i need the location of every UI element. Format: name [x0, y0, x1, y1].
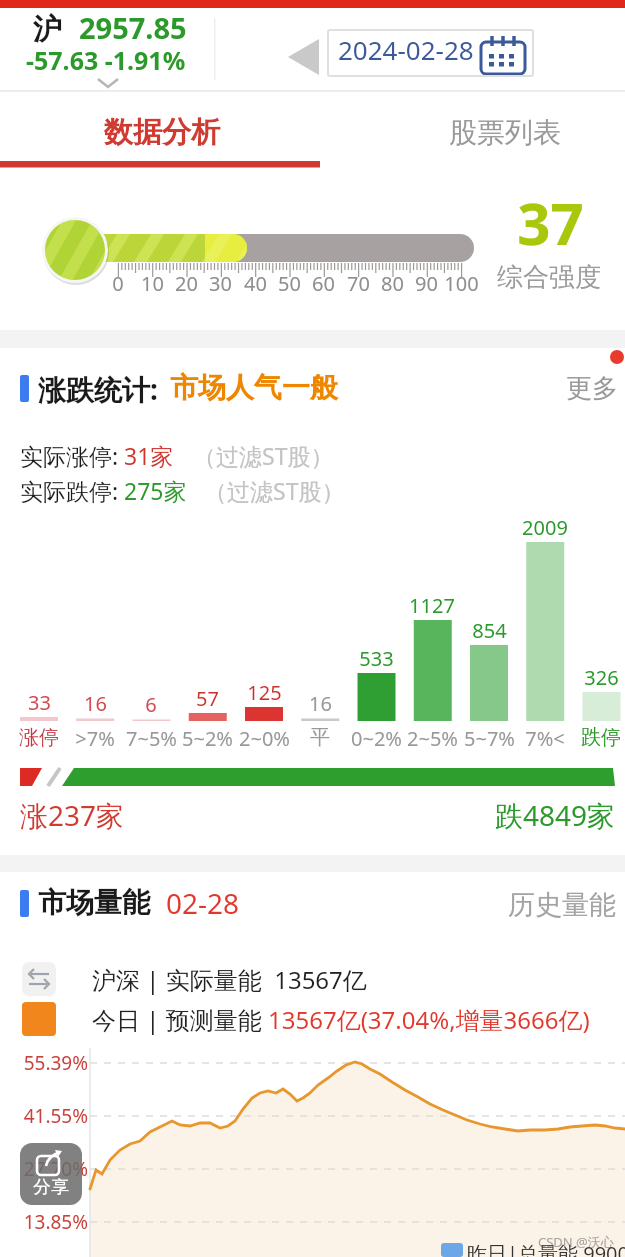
staticText: 02-28: [166, 884, 240, 922]
staticText: 5~7%: [464, 725, 515, 752]
staticText: 2~0%: [239, 725, 290, 752]
staticText: 跌4849家: [494, 796, 615, 834]
staticText: 1127: [409, 592, 455, 619]
staticText: 20: [175, 270, 198, 297]
staticText: 16: [84, 690, 107, 717]
staticText: 90: [415, 270, 438, 297]
staticText: 6: [145, 691, 157, 718]
staticText: 市场量能: [38, 885, 150, 920]
staticText: 2~5%: [407, 725, 458, 752]
staticText: 55.39%: [23, 1050, 88, 1076]
staticText: 41.55%: [23, 1103, 88, 1129]
staticText: 2024-02-28: [338, 32, 474, 67]
staticText: 80: [381, 270, 404, 297]
staticText: 275家: [124, 475, 187, 506]
staticText: 沪: [33, 11, 62, 48]
staticText: 27.70%: [23, 1156, 88, 1182]
staticText: >7%: [75, 725, 115, 752]
staticText: 0: [112, 270, 124, 297]
staticText: 37: [517, 183, 584, 262]
button[interactable]: 2024-02-28: [327, 29, 534, 77]
staticText: 125: [247, 679, 282, 706]
staticText: 40: [244, 270, 267, 297]
button[interactable]: [0, 92, 320, 168]
button[interactable]: 更多: [550, 364, 625, 408]
staticText: 7~5%: [126, 725, 177, 752]
staticText: 13.85%: [23, 1209, 88, 1235]
staticText: 30: [209, 270, 232, 297]
staticText: 10: [141, 270, 164, 297]
staticText: 实际跌停:: [20, 475, 119, 506]
staticText: 533: [359, 645, 394, 672]
staticText: CSDN @沃心: [538, 1233, 614, 1251]
staticText: （过滤ST股）: [204, 475, 345, 506]
staticText: 5~2%: [182, 725, 233, 752]
staticText: 跌停: [581, 725, 621, 750]
staticText: 2957.85: [79, 8, 187, 47]
staticText: 57: [196, 685, 219, 712]
staticText: 50: [278, 270, 301, 297]
button[interactable]: 历史量能: [495, 880, 625, 924]
staticText: 70: [347, 270, 370, 297]
staticText: （过滤ST股）: [193, 440, 334, 471]
staticText: -57.63 -1.91%: [26, 43, 186, 77]
staticText: 涨237家: [20, 796, 125, 834]
staticText: 市场人气一般: [170, 370, 338, 405]
staticText: 数据分析: [104, 114, 220, 151]
staticText: 100: [444, 270, 479, 297]
staticText: 涨跌统计:: [38, 370, 158, 408]
staticText: 昨日|总量能 9900亿: [467, 1240, 625, 1257]
staticText: 历史量能: [508, 888, 616, 922]
button[interactable]: [320, 92, 625, 168]
staticText: 60: [312, 270, 335, 297]
staticText: 0~2%: [351, 725, 402, 752]
staticText: 沪深 | 实际量能 13567亿: [92, 963, 367, 996]
staticText: 实际涨停:: [20, 440, 119, 471]
staticText: 今日 | 预测量能: [92, 1003, 268, 1036]
staticText: 13567亿(37.04%,增量3666亿): [268, 1003, 590, 1036]
staticText: 分享: [33, 1176, 69, 1199]
staticText: 涨停: [19, 725, 59, 750]
staticText: 2009: [522, 514, 568, 541]
staticText: 平: [310, 725, 330, 750]
button[interactable]: 分享: [20, 1143, 82, 1205]
staticText: 854: [472, 617, 507, 644]
staticText: 综合强度: [497, 261, 601, 294]
staticText: 股票列表: [449, 115, 561, 150]
staticText: 7%<: [525, 725, 565, 752]
staticText: 326: [584, 664, 619, 691]
staticText: 更多: [566, 372, 618, 405]
staticText: 33: [28, 689, 51, 716]
staticText: 16: [309, 690, 332, 717]
staticText: 31家: [124, 440, 174, 471]
